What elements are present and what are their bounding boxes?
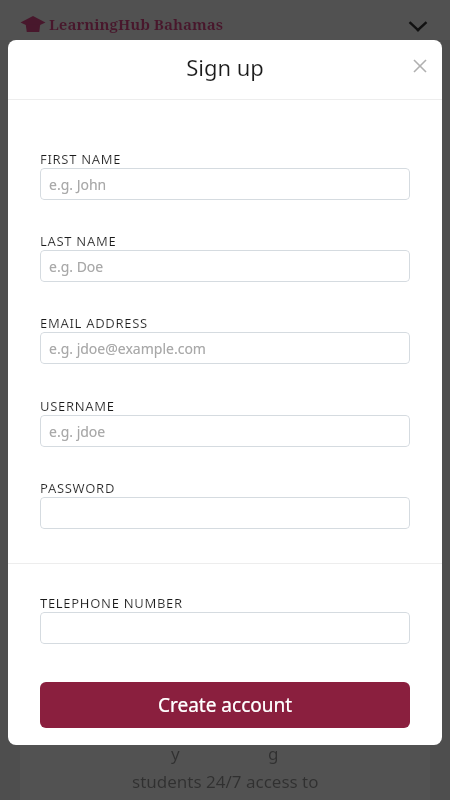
button[interactable]: e.g. Doe xyxy=(40,250,410,282)
staticText: e.g. John xyxy=(49,175,107,194)
staticText: USERNAME xyxy=(40,397,115,415)
staticText: e.g. Doe xyxy=(49,257,104,276)
button[interactable]: Create account xyxy=(40,682,410,728)
button[interactable] xyxy=(40,497,410,529)
staticText: LearningHub Bahamas xyxy=(49,14,223,34)
staticText: LAST NAME xyxy=(40,232,117,250)
staticText: FIRST NAME xyxy=(40,150,122,168)
button[interactable]: Close xyxy=(400,46,440,86)
button[interactable]: e.g. John xyxy=(40,168,410,200)
staticText: e.g. jdoe@example.com xyxy=(49,339,206,358)
staticText: y g xyxy=(171,742,279,765)
staticText: TELEPHONE NUMBER xyxy=(40,594,183,612)
staticText: students 24/7 access to xyxy=(132,770,319,793)
button[interactable]: e.g. jdoe@example.com xyxy=(40,332,410,364)
staticText: e.g. jdoe xyxy=(49,422,106,441)
button[interactable]: e.g. jdoe xyxy=(40,415,410,447)
staticText: EMAIL ADDRESS xyxy=(40,314,148,332)
button[interactable]: Expand menu xyxy=(400,8,436,44)
staticText: Create account xyxy=(158,692,293,718)
staticText: PASSWORD xyxy=(40,479,116,497)
staticText: Sign up xyxy=(186,52,264,82)
button[interactable] xyxy=(40,612,410,644)
